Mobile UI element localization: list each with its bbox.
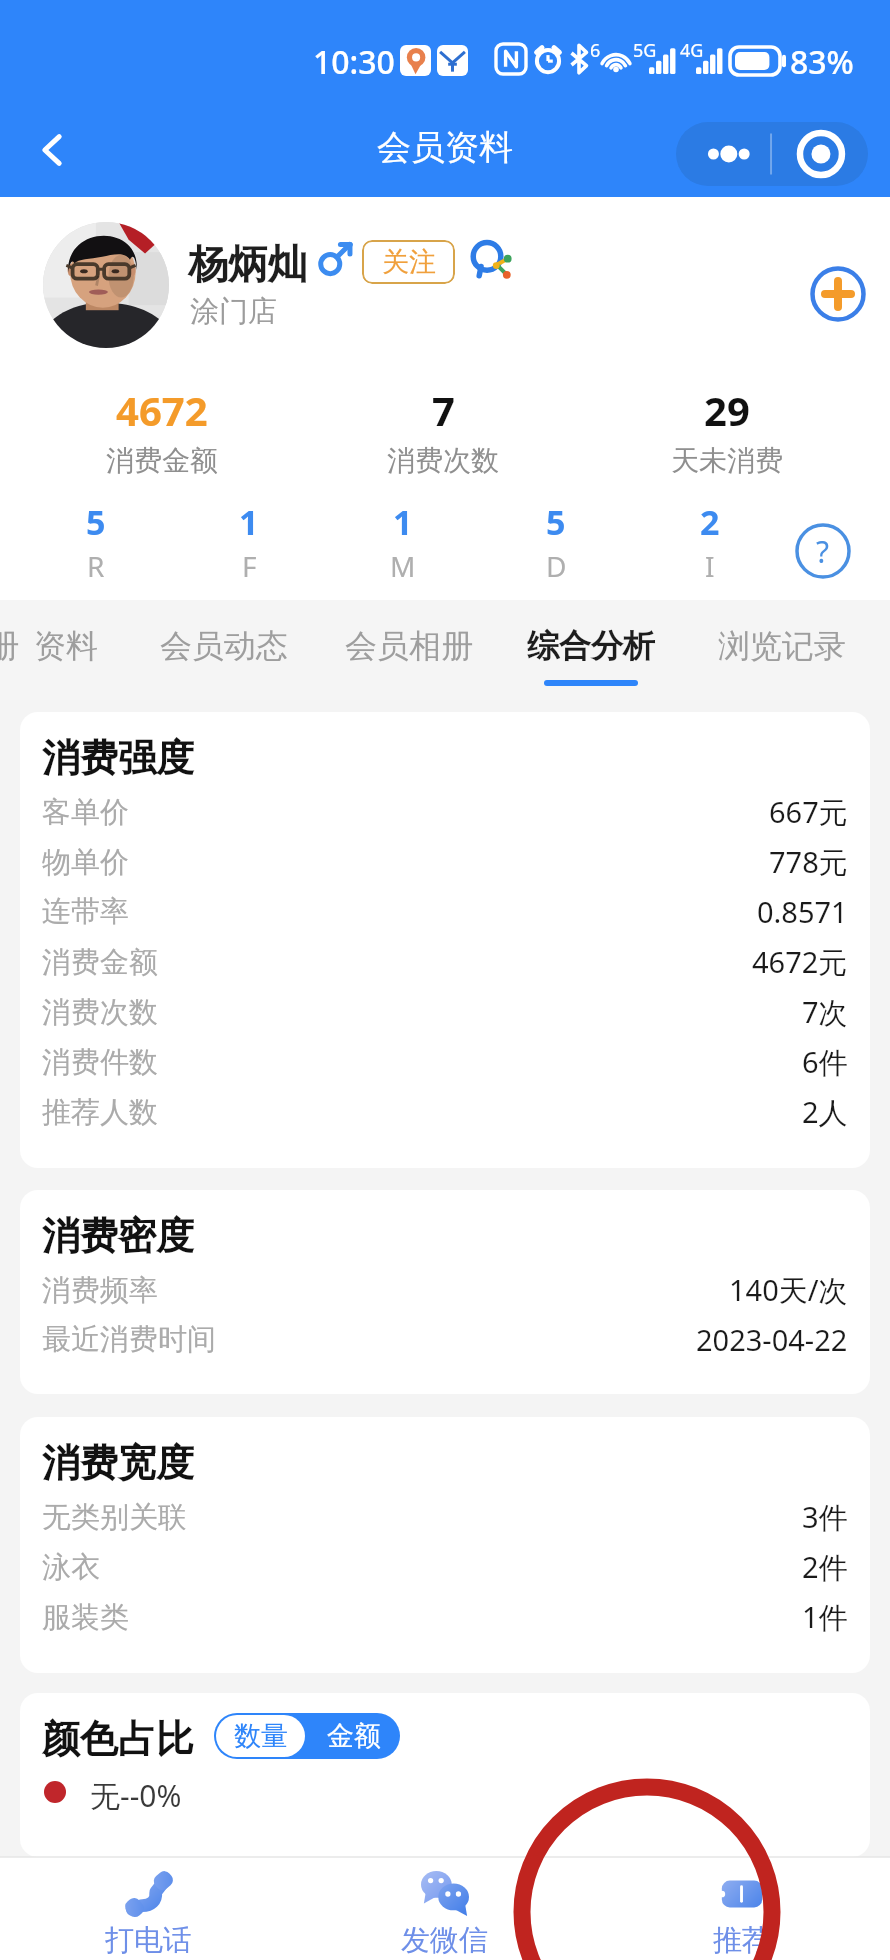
button[interactable]: 29 [637, 383, 817, 478]
staticText: 140天/次 [729, 1270, 848, 1310]
staticText: 资料 [34, 626, 98, 666]
button[interactable]: Avatar [43, 222, 169, 348]
staticText: 服装类 [42, 1599, 129, 1636]
staticText: 天未消费 [671, 443, 783, 478]
staticText: 推荐 [713, 1922, 771, 1959]
staticText: 5 [86, 499, 106, 545]
button[interactable]: 发微信 [296, 1857, 593, 1960]
button[interactable]: 5 [46, 499, 146, 585]
staticText: 667元 [769, 792, 848, 832]
staticText: 5 [546, 499, 566, 545]
staticText: 778元 [769, 842, 848, 882]
staticText: 5G [633, 38, 657, 63]
button[interactable]: Add member [810, 266, 866, 322]
staticText: 消费次数 [42, 994, 158, 1031]
staticText: 金额 [327, 1719, 381, 1753]
staticText: 涂门店 [190, 293, 277, 330]
staticText: 6 [590, 38, 601, 63]
button[interactable]: 金额 [307, 1713, 400, 1759]
button[interactable]: 4672 [72, 383, 252, 478]
button[interactable]: 关注 [362, 240, 455, 284]
staticText: 消费密度 [42, 1212, 194, 1260]
staticText: 4G [680, 38, 704, 63]
staticText: 推荐人数 [42, 1094, 158, 1131]
staticText: 会员动态 [160, 626, 288, 666]
button[interactable]: 综合分析 [527, 600, 655, 700]
staticText: 消费件数 [42, 1044, 158, 1081]
staticText: 6件 [802, 1042, 848, 1082]
staticText: 打电话 [105, 1922, 192, 1959]
staticText: 综合分析 [527, 626, 655, 666]
staticText: 会员资料 [377, 126, 513, 169]
button[interactable]: 数量 [216, 1715, 305, 1757]
staticText: 0.8571 [757, 892, 848, 931]
staticText: 消费金额 [106, 443, 218, 478]
staticText: 2023-04-22 [696, 1320, 848, 1359]
staticText: 物单价 [42, 844, 129, 881]
staticText: 消费强度 [42, 734, 194, 782]
button[interactable]: 推荐 [593, 1857, 890, 1960]
button[interactable]: 打电话 [0, 1857, 296, 1960]
staticText: 2 [700, 499, 720, 545]
button[interactable]: 1 [353, 499, 453, 585]
staticText: I [705, 547, 715, 585]
button[interactable]: 资料 [34, 600, 98, 700]
staticText: M [390, 547, 416, 585]
button[interactable]: 会员动态 [160, 600, 288, 700]
staticText: 2件 [802, 1547, 848, 1587]
staticText: 册 [0, 626, 19, 666]
staticText: 4672元 [752, 942, 848, 982]
button[interactable]: More options [676, 122, 868, 186]
staticText: 7 [432, 383, 455, 437]
staticText: 1 [239, 499, 259, 545]
staticText: 客单价 [42, 794, 129, 831]
staticText: 无--0% [90, 1775, 182, 1816]
staticText: 7次 [802, 992, 848, 1032]
button[interactable]: 5 [506, 499, 606, 585]
staticText: 消费金额 [42, 944, 158, 981]
staticText: 消费宽度 [42, 1439, 194, 1487]
staticText: 83% [790, 40, 854, 84]
button[interactable]: 7 [353, 383, 533, 478]
button[interactable]: 浏览记录 [718, 600, 846, 700]
staticText: 数量 [234, 1719, 288, 1753]
staticText: D [546, 547, 567, 585]
staticText: 浏览记录 [718, 626, 846, 666]
staticText: 颜色占比 [42, 1715, 194, 1763]
staticText: ? [816, 531, 830, 572]
staticText: 无类别关联 [42, 1499, 187, 1536]
staticText: 连带率 [42, 893, 129, 930]
staticText: 关注 [382, 245, 436, 279]
staticText: 4672 [116, 383, 208, 437]
staticText: 泳衣 [42, 1549, 100, 1586]
staticText: R [87, 547, 105, 585]
staticText: 29 [704, 383, 750, 437]
staticText: 3件 [802, 1497, 848, 1537]
staticText: 消费次数 [387, 443, 499, 478]
staticText: 杨炳灿 [188, 239, 308, 289]
staticText: 10:30 [313, 40, 395, 84]
button[interactable]: 2 [660, 499, 760, 585]
staticText: 消费频率 [42, 1272, 158, 1309]
staticText: 1 [393, 499, 413, 545]
staticText: 2人 [802, 1092, 848, 1132]
staticText: 发微信 [401, 1922, 488, 1959]
button[interactable]: Back [20, 118, 84, 182]
button[interactable]: 会员相册 [345, 600, 473, 700]
staticText: 会员相册 [345, 626, 473, 666]
staticText: 最近消费时间 [42, 1321, 216, 1358]
button[interactable]: Message [470, 238, 516, 284]
button[interactable]: Help [795, 523, 851, 579]
staticText: F [242, 547, 257, 585]
staticText: 1件 [802, 1597, 848, 1637]
button[interactable]: 1 [199, 499, 299, 585]
